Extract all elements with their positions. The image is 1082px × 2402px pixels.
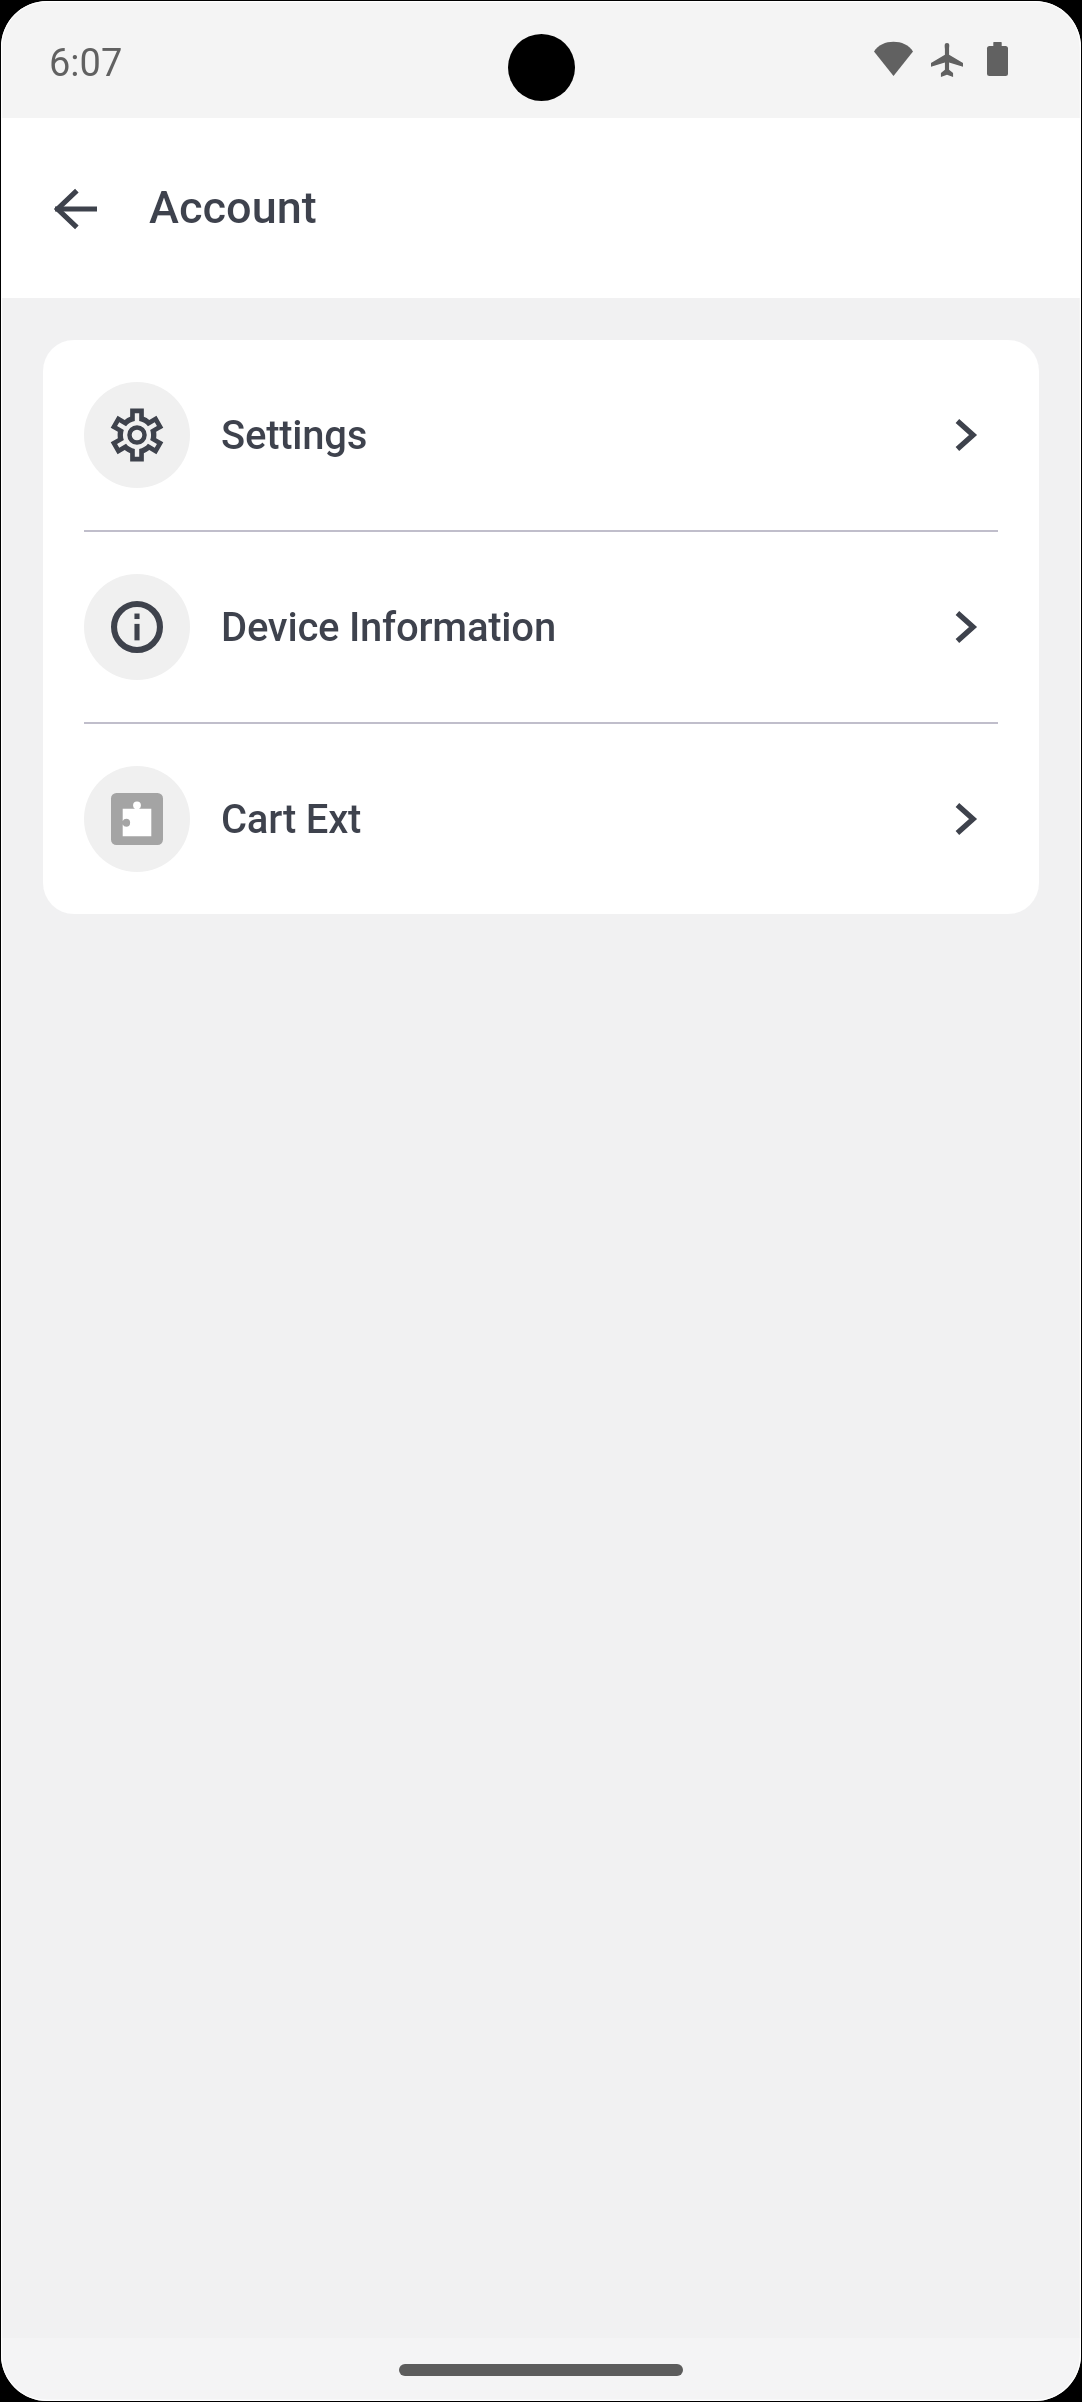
staticText: Device Information: [221, 604, 556, 651]
staticText: Cart Ext: [221, 796, 362, 843]
button[interactable]: Device Information: [43, 532, 1039, 722]
button[interactable]: Back: [33, 166, 118, 251]
button[interactable]: Cart Ext: [43, 724, 1039, 914]
staticText: Settings: [221, 412, 368, 459]
staticText: Account: [149, 181, 317, 234]
button[interactable]: Settings: [43, 340, 1039, 530]
staticText: 6:07: [49, 41, 123, 86]
